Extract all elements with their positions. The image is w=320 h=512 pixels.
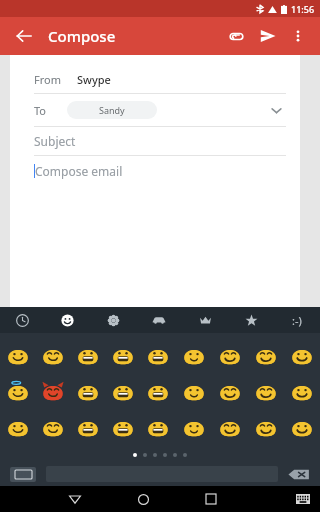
- button[interactable]: Emoji: [105, 373, 140, 409]
- button[interactable]: Emoji: [248, 373, 284, 409]
- button[interactable]: Emoji: [176, 337, 212, 373]
- staticText: Subject: [34, 133, 76, 149]
- button[interactable]: car: [136, 307, 182, 333]
- button[interactable]: Attach file: [220, 20, 252, 52]
- button[interactable]: Emoji: [105, 409, 140, 445]
- button[interactable]: More options: [284, 22, 312, 50]
- button[interactable]: Emoji: [248, 337, 284, 373]
- button[interactable]: Switch to keyboard: [10, 467, 36, 482]
- button[interactable]: From: [10, 65, 300, 93]
- button[interactable]: Home: [109, 486, 177, 512]
- button[interactable]: Emoji: [284, 373, 320, 409]
- button[interactable]: smile: [274, 307, 320, 333]
- button[interactable]: Emoji: [70, 409, 105, 445]
- button[interactable]: crown: [182, 307, 228, 333]
- button[interactable]: Emoji: [35, 337, 70, 373]
- button[interactable]: Emoji: [284, 337, 320, 373]
- button[interactable]: Emoji: [212, 373, 248, 409]
- button[interactable]: Emoji: [0, 409, 35, 445]
- staticText: 11:56: [291, 3, 315, 15]
- button[interactable]: Emoji: [35, 409, 70, 445]
- staticText: From: [34, 72, 61, 87]
- button[interactable]: Emoji: [70, 337, 105, 373]
- button[interactable]: Emoji: [212, 409, 248, 445]
- staticText: Compose: [48, 26, 116, 46]
- button[interactable]: Back: [8, 20, 40, 52]
- button[interactable]: Emoji: [176, 409, 212, 445]
- button[interactable]: To: [10, 94, 300, 126]
- button[interactable]: Emoji: [70, 373, 105, 409]
- button[interactable]: flower: [90, 307, 136, 333]
- button[interactable]: Change keyboard: [286, 486, 320, 512]
- button[interactable]: Emoji: [0, 373, 35, 409]
- staticText: To: [34, 103, 47, 118]
- button[interactable]: Emoji: [140, 409, 176, 445]
- button[interactable]: Emoji: [212, 337, 248, 373]
- button[interactable]: Expand recipients: [266, 100, 286, 120]
- staticText: Swype: [77, 72, 111, 87]
- button[interactable]: star: [228, 307, 274, 333]
- button[interactable]: clock: [0, 307, 45, 333]
- staticText: :-): [292, 313, 302, 328]
- button[interactable]: Emoji: [35, 373, 70, 409]
- staticText: Sandy: [99, 104, 125, 116]
- staticText: Compose email: [35, 163, 123, 179]
- button[interactable]: Send: [252, 20, 284, 52]
- button[interactable]: Emoji: [140, 373, 176, 409]
- button[interactable]: Subject: [10, 127, 300, 155]
- button[interactable]: Recent apps: [177, 486, 245, 512]
- button[interactable]: Emoji: [140, 337, 176, 373]
- button[interactable]: Back: [41, 486, 109, 512]
- button[interactable]: Backspace: [288, 467, 310, 482]
- button[interactable]: Emoji: [176, 373, 212, 409]
- button[interactable]: Emoji: [284, 409, 320, 445]
- button[interactable]: Emoji: [248, 409, 284, 445]
- button[interactable]: Compose email: [10, 156, 300, 186]
- button[interactable]: Emoji: [0, 337, 35, 373]
- button[interactable]: Sandy: [67, 101, 157, 119]
- button[interactable]: smiley: [45, 307, 90, 333]
- button[interactable]: Emoji: [105, 337, 140, 373]
